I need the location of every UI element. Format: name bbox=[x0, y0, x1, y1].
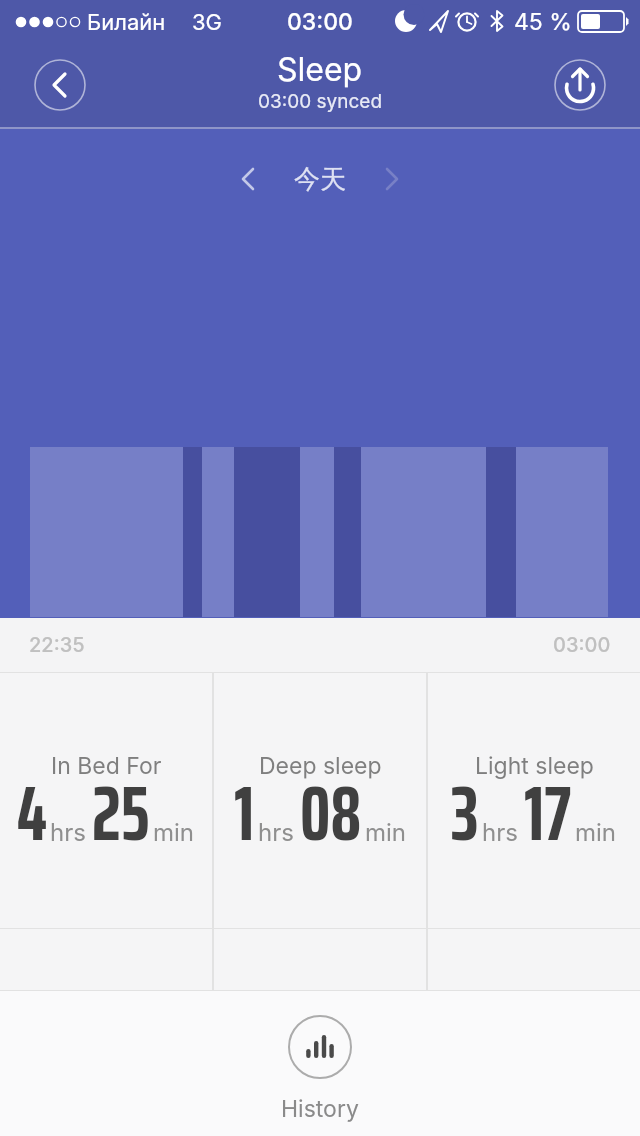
staticText: 03:00 bbox=[553, 633, 611, 657]
staticText: 3G bbox=[192, 9, 223, 36]
staticText: 08 bbox=[300, 754, 362, 874]
staticText: min bbox=[575, 818, 617, 847]
staticText: Deep sleep bbox=[259, 752, 382, 780]
staticText: 今天 bbox=[294, 163, 346, 196]
staticText: In Bed For bbox=[51, 752, 162, 780]
staticText: hrs bbox=[50, 818, 86, 847]
button[interactable]: History bbox=[0, 1015, 640, 1123]
staticText: 17 bbox=[524, 754, 572, 874]
staticText: hrs bbox=[482, 818, 518, 847]
button[interactable]: Deep sleep bbox=[214, 672, 426, 928]
staticText: Light sleep bbox=[475, 752, 594, 780]
staticText: 25 bbox=[92, 754, 150, 874]
staticText: History bbox=[281, 1095, 359, 1123]
staticText: min bbox=[153, 818, 195, 847]
staticText: 03:00 bbox=[287, 8, 353, 36]
button[interactable]: Light sleep bbox=[428, 672, 640, 928]
staticText: 3 bbox=[451, 754, 479, 874]
button[interactable] bbox=[374, 157, 410, 201]
button[interactable]: In Bed For bbox=[0, 672, 212, 928]
staticText: 1 bbox=[234, 754, 255, 874]
button[interactable] bbox=[35, 60, 85, 110]
staticText: 22:35 bbox=[29, 633, 85, 657]
staticText: 03:00 synced bbox=[258, 90, 383, 113]
staticText: Билайн bbox=[87, 9, 166, 36]
staticText: Sleep bbox=[277, 50, 363, 89]
staticText: hrs bbox=[258, 818, 294, 847]
staticText: 4 bbox=[17, 754, 47, 874]
staticText: 45 % bbox=[514, 8, 572, 36]
button[interactable] bbox=[230, 157, 266, 201]
staticText: min bbox=[365, 818, 407, 847]
button[interactable] bbox=[555, 60, 605, 110]
